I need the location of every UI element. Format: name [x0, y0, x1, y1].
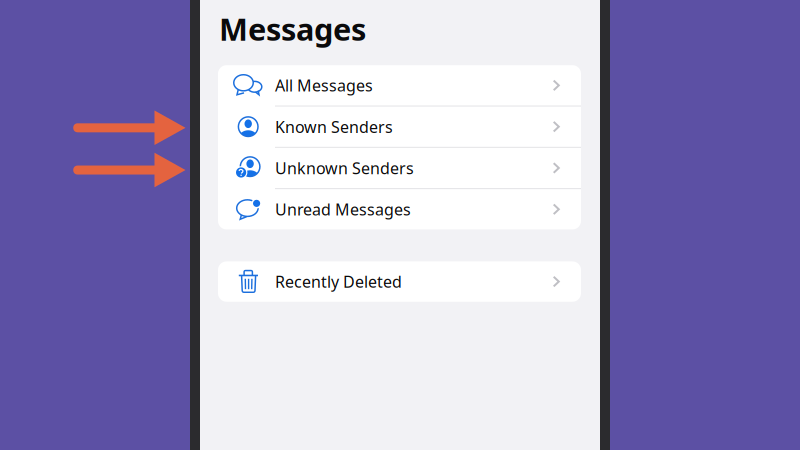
staticText: Unread Messages	[275, 199, 411, 220]
staticText: All Messages	[275, 75, 373, 96]
staticText: Known Senders	[275, 116, 393, 137]
button[interactable]: Unread Messages	[218, 189, 581, 229]
staticText: Unknown Senders	[275, 157, 414, 179]
staticText: Recently Deleted	[275, 271, 402, 292]
staticText: Messages	[219, 8, 366, 49]
button[interactable]: Recently Deleted	[218, 261, 581, 302]
button[interactable]: All Messages	[218, 65, 581, 105]
button[interactable]: Unknown Senders	[218, 148, 581, 188]
button[interactable]: Known Senders	[218, 106, 581, 147]
